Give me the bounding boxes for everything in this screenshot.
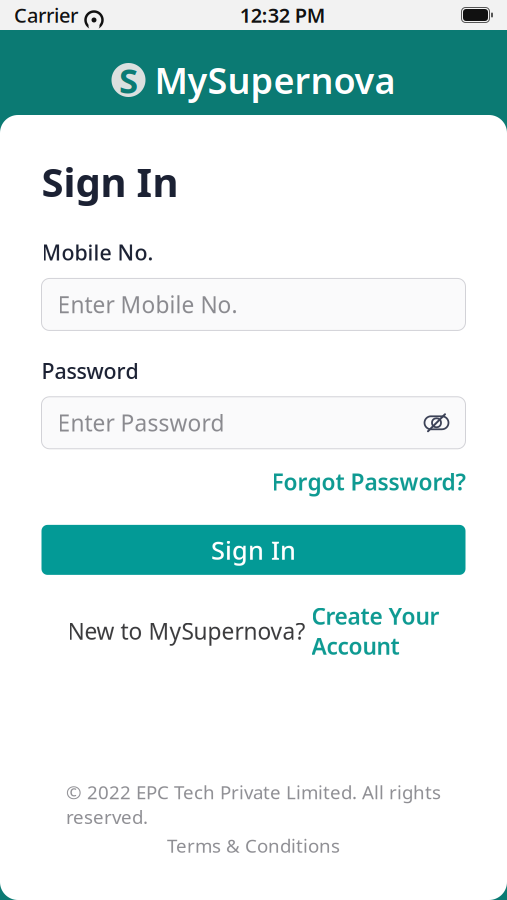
staticText: S xyxy=(119,57,138,103)
staticText: Forgot Password? xyxy=(271,467,465,497)
staticText: Terms & Conditions xyxy=(167,833,340,858)
button[interactable]: Create Your Account xyxy=(311,601,439,661)
button[interactable]: Show password xyxy=(423,410,449,436)
staticText: Password xyxy=(41,356,138,385)
staticText: Enter Password xyxy=(57,408,224,438)
staticText: Enter Mobile No. xyxy=(57,289,237,319)
staticText: Sign In xyxy=(41,155,178,208)
staticText: Carrier xyxy=(14,2,78,28)
staticText: © 2022 EPC Tech Private Limited. All rig… xyxy=(66,780,441,829)
staticText: MySupernova xyxy=(154,56,395,104)
staticText: Create Your Account xyxy=(311,601,439,661)
staticText: Sign In xyxy=(211,533,296,567)
button[interactable]: Terms & Conditions xyxy=(167,833,340,858)
staticText: Mobile No. xyxy=(41,238,153,266)
button[interactable]: Forgot Password? xyxy=(271,467,465,497)
button[interactable]: Sign In xyxy=(41,525,465,575)
staticText: New to MySupernova? xyxy=(67,616,305,646)
button[interactable]: Enter Password xyxy=(41,397,465,449)
staticText: 12:32 PM xyxy=(240,2,326,28)
button[interactable]: Enter Mobile No. xyxy=(41,278,465,330)
